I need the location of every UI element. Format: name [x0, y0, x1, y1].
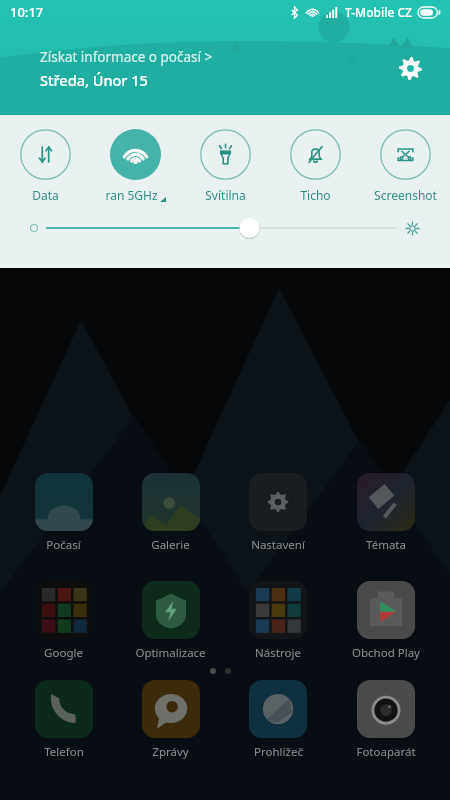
- staticText: Svítilna: [205, 187, 246, 203]
- button[interactable]: Nástroje: [224, 581, 332, 661]
- staticText: Telefon: [44, 744, 84, 760]
- button[interactable]: Zprávy: [117, 680, 224, 760]
- button[interactable]: Optimalizace: [117, 581, 224, 661]
- staticText: Optimalizace: [135, 645, 206, 661]
- staticText: Galerie: [151, 537, 190, 553]
- button[interactable]: Telefon: [10, 680, 117, 760]
- button[interactable]: Data: [0, 127, 90, 205]
- button[interactable]: Galerie: [117, 473, 224, 553]
- button[interactable]: Získat informace o počasí >: [40, 48, 213, 90]
- staticText: Témata: [366, 537, 406, 553]
- staticText: Google: [44, 645, 83, 661]
- button[interactable]: Svítilna: [180, 127, 270, 205]
- staticText: ran 5GHz: [105, 187, 158, 203]
- button[interactable]: Obchod Play: [332, 581, 440, 661]
- staticText: Nástroje: [255, 645, 301, 661]
- button[interactable]: ran 5GHz: [90, 127, 180, 205]
- staticText: Získat informace o počasí >: [40, 48, 213, 66]
- staticText: Data: [32, 187, 59, 203]
- button[interactable]: Brightness: [30, 205, 420, 251]
- staticText: Obchod Play: [352, 645, 420, 661]
- staticText: Středa, Únor 15: [40, 70, 148, 90]
- button[interactable]: Fotoaparát: [332, 680, 440, 760]
- staticText: Zprávy: [152, 744, 189, 760]
- button[interactable]: Screenshot: [360, 127, 450, 205]
- staticText: T-Mobile CZ: [345, 4, 412, 20]
- staticText: 10:17: [10, 3, 44, 21]
- staticText: Počasí: [46, 537, 81, 553]
- staticText: Prohlížeč: [254, 744, 303, 760]
- button[interactable]: Ticho: [270, 127, 360, 205]
- staticText: Nastavení: [251, 537, 305, 553]
- staticText: Ticho: [300, 187, 331, 203]
- button[interactable]: Počasí: [10, 473, 117, 553]
- button[interactable]: Settings: [392, 50, 428, 86]
- button[interactable]: Témata: [332, 473, 440, 553]
- button[interactable]: Prohlížeč: [224, 680, 332, 760]
- button[interactable]: Google: [10, 581, 117, 661]
- staticText: Fotoaparát: [356, 744, 416, 760]
- button[interactable]: Nastavení: [224, 473, 332, 553]
- staticText: Screenshot: [374, 187, 437, 203]
